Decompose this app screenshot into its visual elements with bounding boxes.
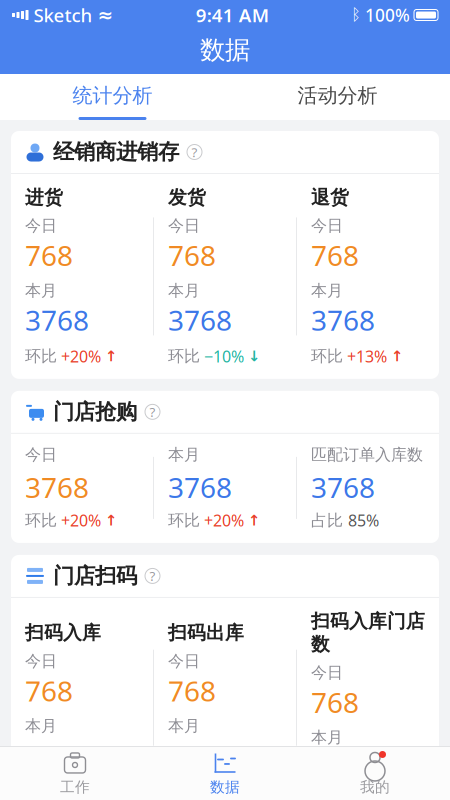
staticText: ?: [149, 403, 155, 421]
staticText: 今日: [168, 216, 200, 236]
staticText: 本月: [168, 281, 200, 300]
staticText: 数据: [210, 778, 240, 796]
staticText: ≈: [97, 4, 113, 26]
staticText: 今日: [25, 651, 57, 671]
staticText: 768: [25, 237, 73, 274]
staticText: 3768: [168, 737, 232, 774]
staticText: 本月: [311, 281, 343, 300]
staticText: +13%: [347, 346, 387, 367]
staticText: +20%: [61, 510, 101, 531]
staticText: +20%: [61, 346, 101, 367]
staticText: 环比: [168, 510, 200, 530]
staticText: 环比: [25, 510, 57, 530]
button[interactable]: 数据: [150, 745, 300, 800]
staticText: 占比: [311, 510, 343, 530]
staticText: 进货: [25, 186, 63, 209]
staticText: 3768: [25, 301, 89, 339]
staticText: 今日: [168, 651, 200, 671]
staticText: 本月: [25, 281, 57, 300]
staticText: Sketch: [33, 3, 92, 27]
staticText: 我的: [360, 778, 390, 796]
staticText: ↓: [248, 348, 260, 364]
staticText: 本月: [25, 716, 57, 736]
staticText: 768: [311, 237, 359, 274]
staticText: 3768: [25, 737, 89, 774]
staticText: 3768: [311, 748, 375, 785]
staticText: 768: [168, 237, 216, 274]
staticText: 3768: [25, 468, 89, 506]
staticText: 3768: [168, 468, 232, 506]
staticText: 768: [25, 672, 73, 709]
staticText: 今日: [25, 445, 57, 464]
staticText: ?: [149, 567, 155, 585]
staticText: 本月: [168, 716, 200, 736]
staticText: 768: [168, 672, 216, 709]
staticText: 今日: [311, 216, 343, 236]
staticText: 3768: [311, 468, 375, 506]
staticText: 100%: [365, 3, 410, 26]
button[interactable]: 统计分析: [0, 74, 225, 120]
staticText: 环比: [311, 346, 343, 366]
staticText: 今日: [311, 663, 343, 682]
staticText: 768: [311, 683, 359, 721]
staticText: 3768: [168, 301, 232, 339]
staticText: ↑: [105, 512, 117, 529]
staticText: ᛒ: [351, 7, 361, 23]
staticText: 本月: [311, 728, 343, 747]
staticText: 扫码出库: [168, 621, 244, 644]
button[interactable]: 活动分析: [225, 74, 450, 120]
staticText: −10%: [204, 346, 244, 367]
staticText: 门店扫码: [53, 563, 137, 589]
staticText: 工作: [60, 778, 90, 796]
staticText: ↑: [248, 512, 260, 529]
staticText: 活动分析: [297, 83, 377, 108]
staticText: ↑: [391, 348, 403, 364]
staticText: 发货: [168, 186, 206, 209]
staticText: 环比: [168, 346, 200, 366]
staticText: 3768: [311, 301, 375, 339]
staticText: 本月: [168, 445, 200, 464]
staticText: 经销商进销存: [53, 139, 179, 165]
staticText: ↑: [105, 348, 117, 364]
staticText: 门店抢购: [53, 399, 137, 425]
button[interactable]: 我的: [300, 745, 450, 800]
staticText: 退货: [311, 186, 349, 209]
staticText: 匹配订单入库数: [311, 445, 423, 464]
staticText: 9:41 AM: [196, 3, 269, 27]
staticText: 扫码入库门店数: [311, 610, 425, 656]
staticText: 今日: [25, 216, 57, 236]
staticText: 85%: [348, 510, 379, 531]
button[interactable]: 工作: [0, 745, 150, 800]
staticText: 扫码入库: [25, 621, 101, 644]
staticText: 统计分析: [72, 83, 152, 108]
staticText: +20%: [204, 510, 244, 531]
staticText: 数据: [200, 34, 250, 65]
staticText: 环比: [25, 346, 57, 366]
staticText: ?: [191, 143, 197, 161]
